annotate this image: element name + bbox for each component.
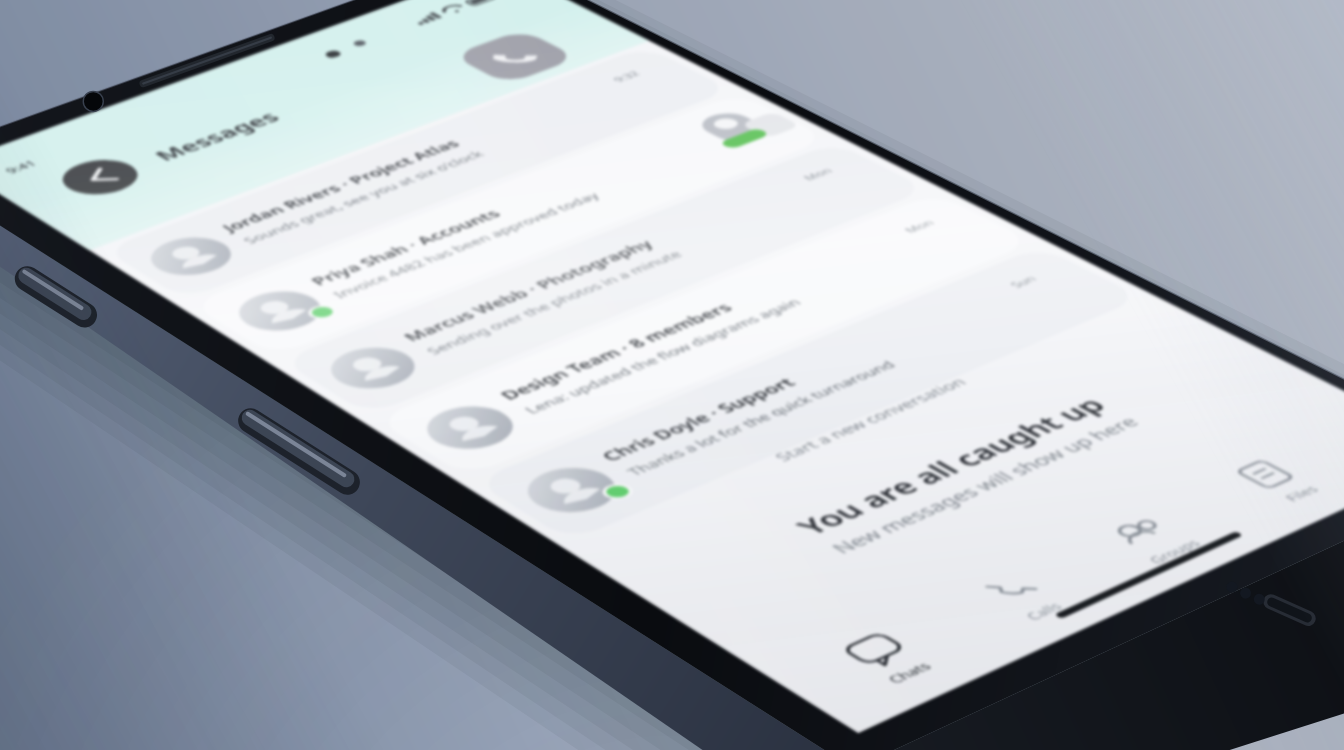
button[interactable]: Groups tab <box>1061 501 1208 573</box>
button[interactable]: Call <box>445 26 584 87</box>
button[interactable] <box>280 141 924 412</box>
button[interactable]: Chats tab <box>794 619 945 696</box>
button[interactable] <box>374 192 1028 473</box>
button[interactable]: Calls tab <box>929 559 1078 634</box>
button[interactable] <box>103 46 728 297</box>
button[interactable]: Files tab <box>1188 445 1333 515</box>
button[interactable] <box>473 246 1138 539</box>
button[interactable] <box>189 93 823 354</box>
button[interactable]: Back <box>41 150 158 204</box>
